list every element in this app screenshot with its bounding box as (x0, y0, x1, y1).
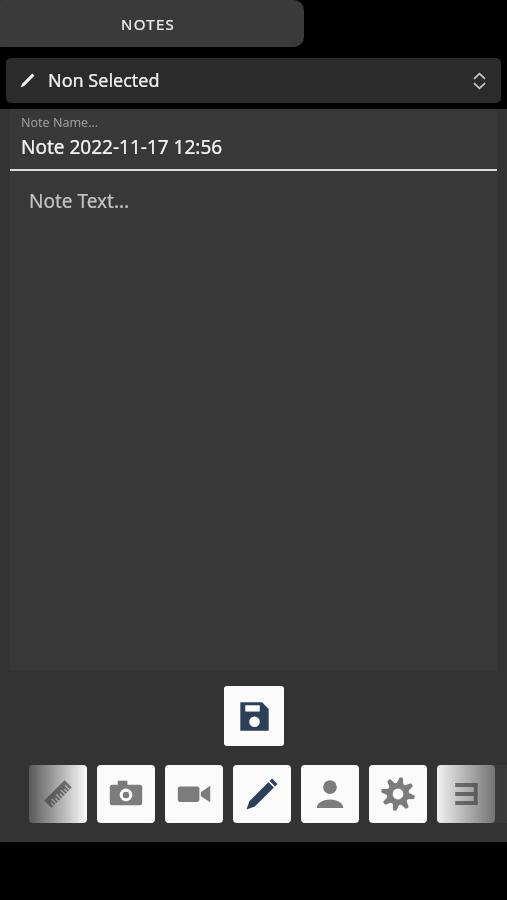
staticText: Note 2022-11-17 12:56 (21, 134, 223, 160)
button[interactable]: Measure (29, 765, 87, 823)
button[interactable]: Save note (224, 686, 284, 746)
staticText: Note Name... (21, 114, 99, 131)
staticText: NOTES (121, 14, 176, 34)
staticText: Non Selected (48, 68, 160, 93)
button[interactable]: Video (165, 765, 223, 823)
staticText: Note Text... (29, 188, 130, 214)
button[interactable]: Non Selected (6, 58, 501, 103)
button[interactable]: Contacts (301, 765, 359, 823)
button[interactable]: Settings (369, 765, 427, 823)
button[interactable]: Note Text... (10, 171, 497, 671)
button[interactable]: Notes (233, 765, 291, 823)
button[interactable]: Camera (97, 765, 155, 823)
button[interactable]: Note Name... (10, 109, 497, 169)
button[interactable]: List (437, 765, 495, 823)
button[interactable]: NOTES (0, 0, 304, 47)
